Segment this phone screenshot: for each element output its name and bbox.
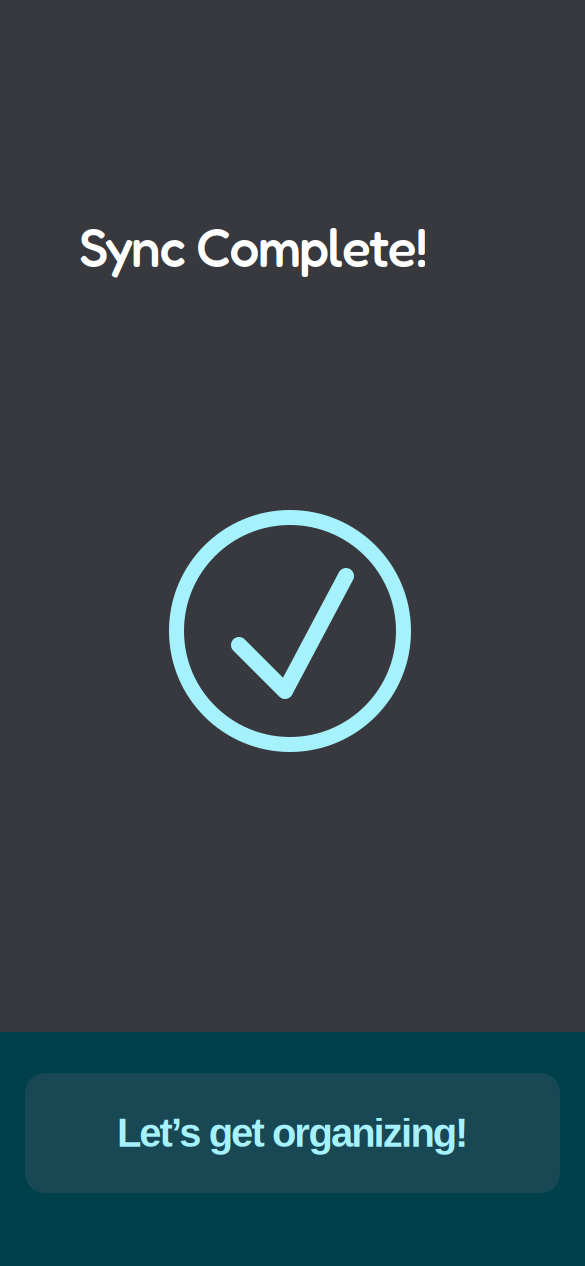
button[interactable]: Let’s get organizing!	[25, 1073, 560, 1193]
staticText: Let’s get organizing!	[117, 1111, 468, 1155]
staticText: Sync Complete!	[79, 214, 428, 278]
